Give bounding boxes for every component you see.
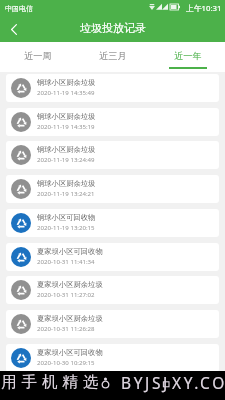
staticText: 2020-11-19 13:24:49 — [37, 155, 95, 163]
staticText: 夏家坝小区厨余垃圾 — [37, 280, 103, 289]
staticText: 近三月 — [99, 50, 127, 62]
staticText: 钢球小区厨余垃圾 — [37, 179, 96, 188]
staticText: 2020-10-31 11:26:28 — [37, 324, 95, 332]
staticText: 2020-11-19 14:35:49 — [37, 88, 95, 96]
staticText: 2020-11-19 13:20:15 — [37, 223, 95, 231]
button[interactable]: 钢球小区厨余垃圾 — [6, 74, 219, 102]
staticText: 夏家坝小区可回收物 — [37, 247, 103, 256]
staticText: 2020-10-31 11:41:34 — [37, 257, 95, 265]
staticText: 2020-10-31 11:27:02 — [37, 290, 95, 298]
staticText: 2020-11-19 14:35:19 — [37, 122, 95, 130]
staticText: 钢球小区厨余垃圾 — [37, 78, 96, 87]
staticText: 上午10:31 — [186, 3, 222, 14]
button[interactable]: 钢球小区可回收物 — [6, 209, 219, 237]
staticText: 2020-11-19 13:24:21 — [37, 189, 95, 197]
staticText: 钢球小区厨余垃圾 — [37, 145, 96, 154]
button[interactable]: 近三月 — [75, 42, 150, 72]
staticText: XY.CO — [172, 372, 225, 393]
staticText: 中国电信 — [5, 4, 33, 13]
button[interactable]: 近一年 — [150, 42, 225, 72]
staticText: 近一年 — [174, 50, 202, 62]
staticText: 夏家坝小区厨余垃圾 — [37, 314, 103, 323]
staticText: BYJSJ — [121, 372, 170, 393]
staticText: 近一周 — [24, 50, 52, 62]
button[interactable]: 夏家坝小区厨余垃圾 — [6, 310, 219, 338]
button[interactable]: Back — [0, 15, 28, 43]
button[interactable]: 钢球小区厨余垃圾 — [6, 141, 219, 169]
staticText: 2020-10-30 10:29:15 — [37, 358, 95, 366]
button[interactable]: 钢球小区厨余垃圾 — [6, 175, 219, 203]
button[interactable]: 近一周 — [0, 42, 75, 72]
staticText: 钢球小区厨余垃圾 — [37, 112, 96, 121]
button[interactable]: 夏家坝小区可回收物 — [6, 243, 219, 271]
staticText: 用手机精选 — [1, 372, 104, 392]
staticText: 垃圾投放记录 — [80, 21, 146, 35]
button[interactable]: 夏家坝小区厨余垃圾 — [6, 276, 219, 304]
button[interactable]: 夏家坝小区可回收物 — [6, 344, 219, 372]
staticText: 钢球小区可回收物 — [37, 213, 96, 222]
button[interactable]: 钢球小区厨余垃圾 — [6, 108, 219, 136]
staticText: 夏家坝小区可回收物 — [37, 348, 103, 357]
